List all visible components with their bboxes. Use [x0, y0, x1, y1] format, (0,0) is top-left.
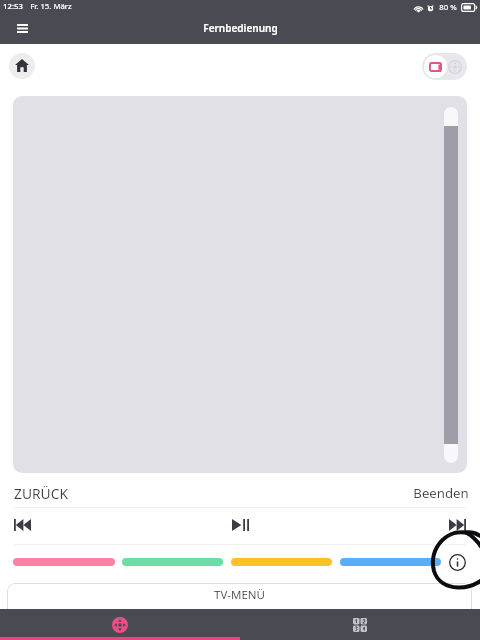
button[interactable]: Farbtaste — [122, 558, 223, 566]
button[interactable]: Home — [9, 53, 35, 79]
staticText: 12:53 — [3, 1, 23, 12]
button[interactable]: Zifferntasten — [240, 609, 480, 640]
staticText: ZURÜCK — [14, 484, 68, 503]
button[interactable]: Menü — [10, 16, 34, 40]
button[interactable]: TV-Modus — [424, 55, 447, 78]
staticText: TV-MENÜ — [214, 587, 265, 603]
button[interactable]: Farbtaste — [340, 558, 441, 566]
button[interactable]: Fernbedienung — [0, 609, 240, 640]
staticText: 80 % — [439, 2, 457, 13]
staticText: Fr. 15. März — [30, 1, 72, 12]
button[interactable]: Info — [445, 550, 469, 574]
button[interactable]: Zurückspulen — [8, 511, 36, 539]
button[interactable]: Farbtaste — [231, 558, 332, 566]
button[interactable]: TV-MENÜ — [7, 583, 472, 621]
button[interactable]: Wiedergabe oder Pause — [226, 511, 254, 539]
button[interactable]: Farbtaste — [13, 558, 115, 566]
button[interactable]: Vorspulen — [443, 511, 471, 539]
staticText: Fernbedienung — [203, 21, 278, 35]
staticText: Beenden — [413, 484, 469, 502]
button[interactable]: Beenden — [413, 484, 469, 502]
button[interactable]: ZURÜCK — [14, 484, 68, 503]
button[interactable]: Steuerkreuz-Modus — [444, 56, 466, 78]
